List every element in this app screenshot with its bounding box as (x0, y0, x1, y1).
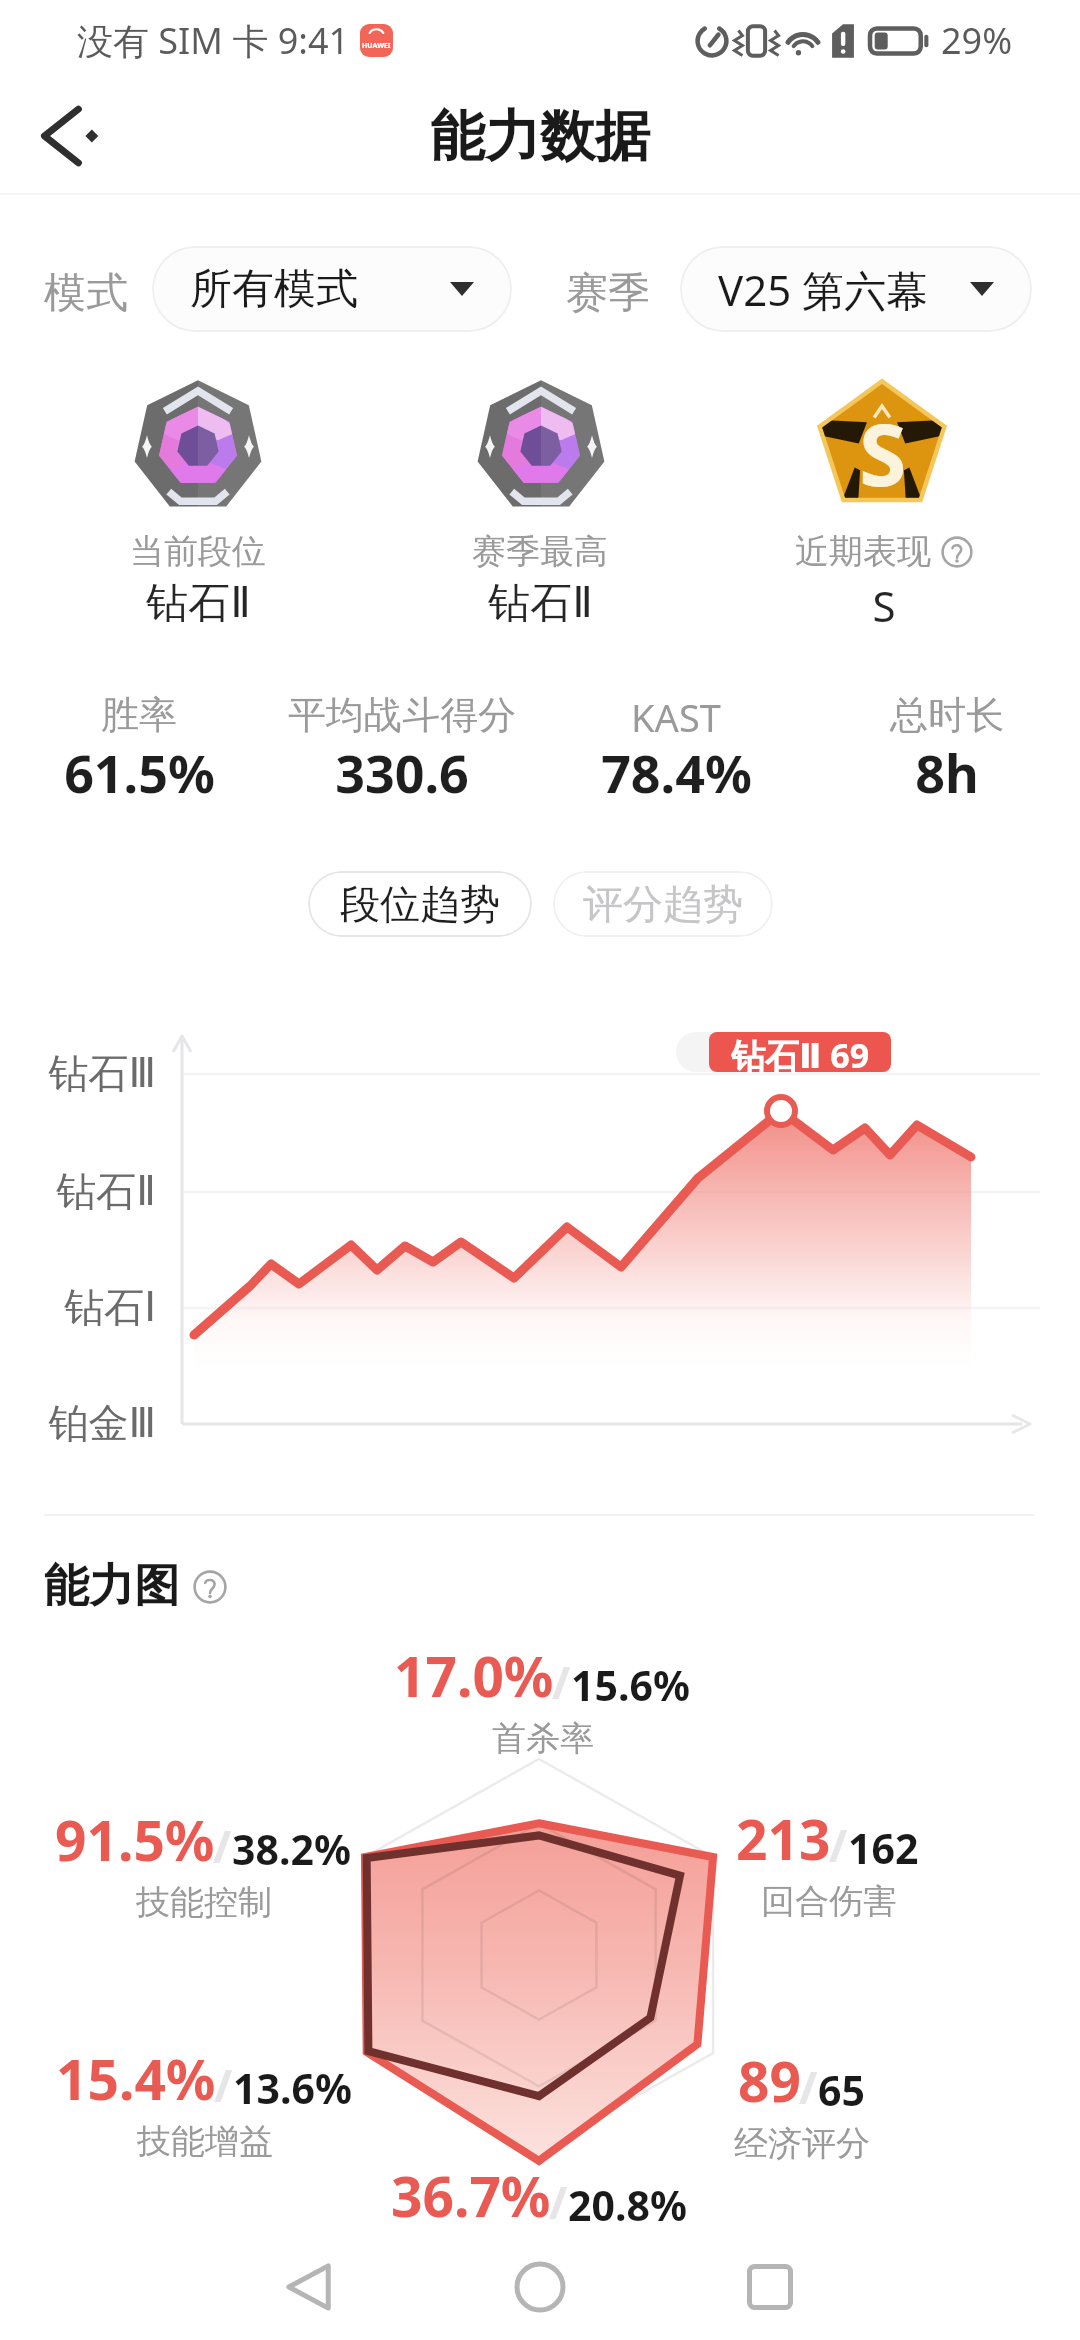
button[interactable]: Ability chart info (193, 1570, 227, 1604)
button[interactable]: 所有模式 (152, 246, 512, 332)
staticText: / (552, 1652, 571, 1712)
staticText: 没有 SIM 卡 9:41 (77, 16, 350, 65)
staticText: 段位趋势 (340, 879, 500, 929)
staticText: 当前段位 (130, 530, 266, 573)
button[interactable]: 段位趋势 (308, 871, 532, 937)
staticText: 20.8% (568, 2177, 687, 2233)
staticText: 回合伤害 (761, 1880, 897, 1923)
staticText: 赛季最高 (472, 530, 608, 573)
staticText: 总时长 (890, 691, 1004, 739)
staticText: S (872, 577, 896, 634)
button[interactable]: Back (255, 2232, 365, 2340)
staticText: / (799, 2057, 818, 2117)
button[interactable]: Recent performance rating S (815, 380, 949, 510)
staticText: 15.4% (56, 2041, 216, 2116)
staticText: 技能控制 (136, 1881, 272, 1924)
staticText: 赛季 (566, 267, 650, 320)
staticText: 首杀率 (492, 1717, 594, 1760)
staticText: 65 (818, 2062, 865, 2118)
staticText: 技能增益 (137, 2120, 273, 2163)
staticText: 胜率 (101, 691, 177, 739)
staticText: 钻石Ⅱ (146, 577, 251, 630)
staticText: 铂金Ⅲ (48, 1398, 156, 1448)
staticText: / (214, 2055, 233, 2115)
staticText: 近期表现 (795, 530, 931, 573)
staticText: 78.4% (601, 737, 752, 808)
staticText: 15.6% (571, 1657, 690, 1713)
staticText: 29% (941, 16, 1013, 65)
staticText: 钻石Ⅲ (48, 1048, 156, 1098)
staticText: 评分趋势 (583, 879, 743, 929)
staticText: 13.6% (233, 2060, 352, 2116)
staticText: 经济评分 (734, 2122, 870, 2165)
staticText: / (829, 1815, 848, 1875)
button[interactable]: Home (485, 2232, 595, 2340)
staticText: 钻石Ⅱ (488, 577, 593, 630)
staticText: 能力图 (44, 1558, 179, 1615)
button[interactable]: Back (30, 94, 114, 178)
button[interactable]: Season peak Diamond II (476, 379, 606, 513)
staticText: V25 第六幕 (718, 261, 929, 318)
button[interactable]: V25 第六幕 (680, 246, 1032, 332)
staticText: 能力数据 (430, 102, 650, 171)
staticText: 8h (915, 737, 979, 808)
button[interactable]: Recents (715, 2232, 825, 2340)
staticText: 钻石Ⅱ 69 (731, 1032, 870, 1072)
staticText: 89 (738, 2043, 801, 2118)
staticText: 钻石Ⅰ (64, 1282, 156, 1332)
staticText: 38.2% (232, 1821, 351, 1877)
staticText: 钻石Ⅱ (56, 1166, 156, 1216)
button[interactable]: Recent performance info (941, 536, 973, 568)
button[interactable]: 评分趋势 (553, 871, 773, 937)
staticText: / (549, 2172, 568, 2232)
staticText: 所有模式 (190, 263, 358, 316)
staticText: 162 (848, 1820, 919, 1876)
staticText: / (213, 1816, 232, 1876)
staticText: 17.0% (394, 1638, 554, 1713)
staticText: 36.7% (391, 2158, 551, 2233)
staticText: 330.6 (335, 737, 469, 808)
staticText: 61.5% (64, 737, 215, 808)
staticText: 模式 (44, 267, 128, 320)
button[interactable]: Current rank Diamond II (133, 379, 263, 513)
staticText: 213 (736, 1801, 831, 1876)
staticText: 91.5% (55, 1802, 215, 1877)
staticText: S (859, 394, 907, 511)
staticText: KAST (631, 691, 721, 743)
staticText: HUAWEI (362, 41, 391, 51)
staticText: 平均战斗得分 (288, 691, 516, 739)
